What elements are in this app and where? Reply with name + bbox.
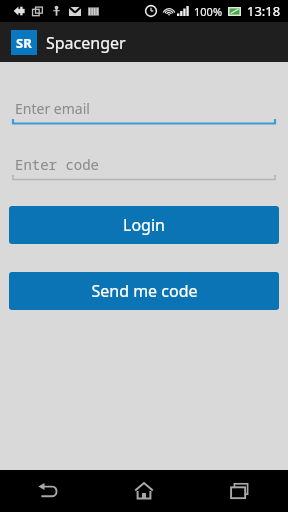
button[interactable]: Recent apps [192,470,288,512]
button[interactable]: Back [0,470,96,512]
button[interactable]: Home [96,470,192,512]
staticText: Send me code [91,280,198,302]
staticText: Login [123,214,165,236]
staticText: 100% [194,4,223,19]
button[interactable]: Send me code [9,272,279,310]
button[interactable]: Enter code [12,151,276,181]
staticText: Enter email [15,99,90,118]
button[interactable]: Enter email [12,95,276,125]
staticText: Enter code [15,155,99,174]
button[interactable]: Login [9,206,279,244]
staticText: SR [16,34,32,52]
staticText: 13:18 [247,2,281,20]
staticText: Spacenger [46,32,126,54]
